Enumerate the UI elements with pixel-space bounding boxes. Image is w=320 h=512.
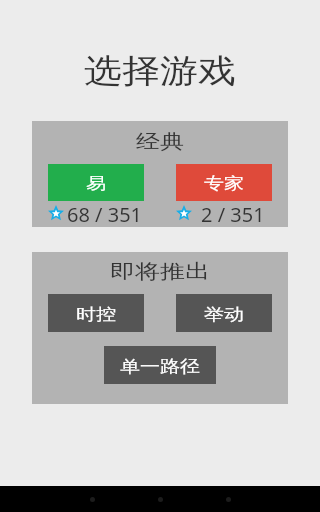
- staticText: 经典: [136, 130, 184, 154]
- button[interactable]: 举动: [176, 294, 272, 332]
- button[interactable]: 易: [48, 164, 144, 201]
- staticText: 选择游戏: [84, 50, 236, 92]
- staticText: 易: [86, 173, 106, 194]
- button[interactable]: 时控: [48, 294, 144, 332]
- staticText: 举动: [204, 304, 244, 325]
- staticText: 时控: [76, 304, 116, 325]
- button[interactable]: 单一路径: [104, 346, 216, 384]
- staticText: 2 / 351: [201, 201, 265, 228]
- staticText: 单一路径: [120, 356, 200, 377]
- button[interactable]: 专家: [176, 164, 272, 201]
- staticText: 即将推出: [110, 259, 210, 284]
- staticText: 专家: [204, 173, 244, 194]
- staticText: 68 / 351: [67, 201, 143, 228]
